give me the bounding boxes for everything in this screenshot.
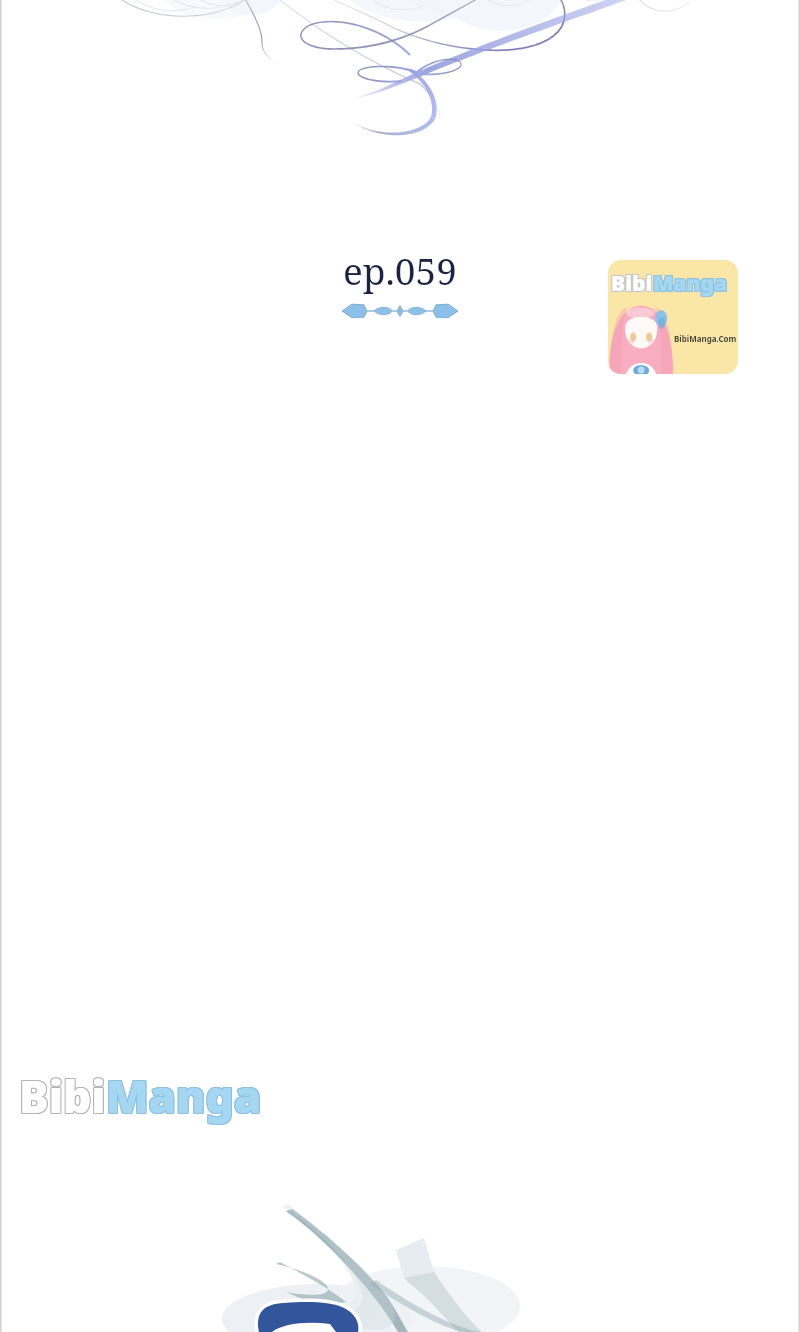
staticText: Manga [652, 269, 727, 298]
staticText: Bibi [610, 270, 652, 299]
button[interactable]: Comic page, tap to show controls [0, 0, 800, 1332]
staticText: Bibi [610, 269, 652, 298]
staticText: Manga [107, 1065, 263, 1125]
staticText: Bibi [612, 268, 654, 297]
staticText: Bibi [18, 1066, 105, 1126]
staticText: Bibi [611, 270, 653, 299]
staticText: Manga [653, 269, 728, 298]
staticText: Manga [106, 1065, 262, 1125]
staticText: Manga [654, 270, 729, 299]
staticText: BibiManga.Com [674, 333, 737, 344]
button[interactable]: BibiManga watermark [19, 1066, 262, 1126]
staticText: Manga [105, 1065, 261, 1125]
staticText: Bibi [612, 270, 654, 299]
staticText: Bibi [20, 1067, 107, 1127]
staticText: Manga [654, 268, 729, 297]
staticText: ep.059 [343, 245, 457, 295]
staticText: Bibi [612, 269, 654, 298]
staticText: Manga [652, 270, 727, 299]
staticText: Manga [654, 269, 729, 298]
staticText: Manga [106, 1066, 262, 1126]
staticText: Bibi [18, 1065, 105, 1125]
staticText: Manga [652, 268, 727, 297]
staticText: Bibi [611, 268, 653, 297]
staticText: Manga [107, 1066, 263, 1126]
button[interactable]: BibiManga logo [608, 260, 738, 374]
staticText: Bibi [19, 1067, 106, 1127]
staticText: Bibi [611, 269, 653, 298]
staticText: Bibi [19, 1065, 106, 1125]
staticText: Manga [107, 1067, 263, 1127]
staticText: Manga [105, 1067, 261, 1127]
staticText: Bibi [20, 1066, 107, 1126]
staticText: Manga [653, 268, 728, 297]
staticText: Bibi [610, 268, 652, 297]
staticText: Bibi [20, 1065, 107, 1125]
staticText: Bibi [18, 1067, 105, 1127]
staticText: Bibi [19, 1066, 106, 1126]
staticText: Manga [106, 1067, 262, 1127]
staticText: Manga [105, 1066, 261, 1126]
staticText: Manga [653, 270, 728, 299]
